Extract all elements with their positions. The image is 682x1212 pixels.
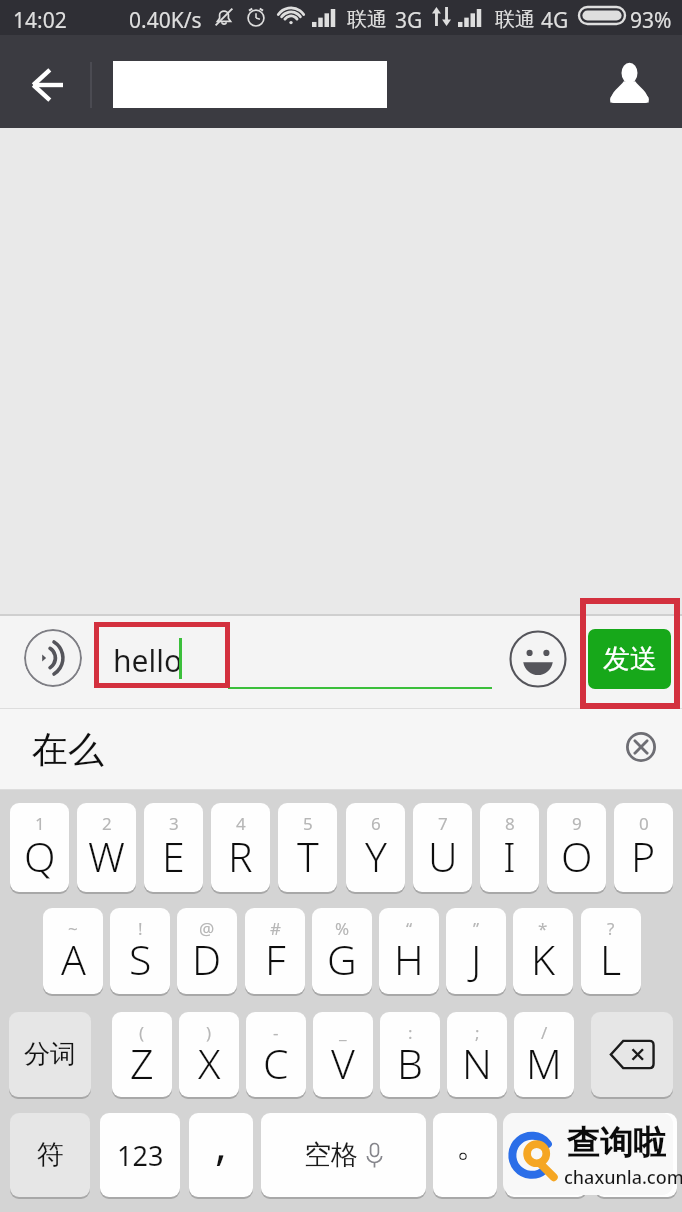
staticText: M bbox=[526, 1035, 562, 1091]
button[interactable]: * bbox=[513, 908, 573, 994]
staticText: W bbox=[88, 828, 125, 884]
button[interactable]: ) bbox=[179, 1012, 239, 1097]
staticText: Q bbox=[24, 828, 56, 884]
button[interactable]: ( bbox=[112, 1012, 172, 1097]
button[interactable]: % bbox=[312, 908, 372, 994]
staticText: hello bbox=[113, 640, 183, 681]
staticText: S bbox=[129, 931, 152, 987]
staticText: I bbox=[503, 828, 516, 884]
button[interactable]: 9 bbox=[547, 803, 606, 892]
staticText: 4 bbox=[236, 812, 246, 835]
staticText: % bbox=[335, 917, 350, 940]
button[interactable] bbox=[595, 1113, 677, 1197]
button[interactable]: 发送 bbox=[588, 629, 671, 689]
staticText: 分词 bbox=[24, 1038, 76, 1071]
staticText: ; bbox=[475, 1021, 480, 1044]
button[interactable]: Emoji bbox=[508, 629, 568, 689]
staticText: ? bbox=[607, 917, 615, 940]
staticText: H bbox=[394, 931, 424, 987]
button[interactable]: ~ bbox=[43, 908, 103, 994]
button[interactable]: 3 bbox=[144, 803, 203, 892]
button[interactable]: “ bbox=[379, 908, 439, 994]
button[interactable]: 6 bbox=[346, 803, 405, 892]
staticText: # bbox=[270, 917, 281, 940]
staticText: ” bbox=[473, 917, 480, 940]
button[interactable]: ? bbox=[581, 908, 641, 994]
staticText: 。 bbox=[456, 1123, 490, 1166]
button[interactable]: Voice input bbox=[24, 629, 82, 687]
staticText: E bbox=[162, 828, 185, 884]
button[interactable]: 分词 bbox=[9, 1012, 91, 1097]
button[interactable]: _ bbox=[313, 1012, 373, 1097]
staticText: 联通 bbox=[495, 7, 535, 32]
staticText: ( bbox=[139, 1021, 145, 1044]
button[interactable]: 。 bbox=[433, 1113, 497, 1197]
staticText: 0.40K/s bbox=[129, 6, 202, 35]
button[interactable]: - bbox=[246, 1012, 306, 1097]
button[interactable]: ” bbox=[446, 908, 506, 994]
button[interactable]: # bbox=[245, 908, 305, 994]
staticText: ) bbox=[206, 1021, 212, 1044]
button[interactable]: @ bbox=[177, 908, 237, 994]
staticText: 3 bbox=[169, 812, 179, 835]
button[interactable]: 符 bbox=[10, 1113, 90, 1197]
staticText: Y bbox=[365, 828, 387, 884]
button[interactable]: Clear suggestions bbox=[619, 725, 663, 769]
button[interactable]: 0 bbox=[614, 803, 673, 892]
staticText: chaxunla.com bbox=[564, 1165, 682, 1190]
staticText: ~ bbox=[68, 917, 78, 940]
button[interactable]: 5 bbox=[278, 803, 337, 892]
button[interactable]: 4 bbox=[211, 803, 270, 892]
staticText: G bbox=[327, 931, 357, 987]
staticText: ! bbox=[138, 917, 143, 940]
staticText: 5 bbox=[303, 812, 313, 835]
staticText: 查询啦 bbox=[567, 1122, 666, 1164]
staticText: A bbox=[61, 931, 86, 987]
staticText: @ bbox=[199, 917, 215, 940]
staticText: 3G bbox=[395, 6, 423, 35]
button[interactable]: 空格 bbox=[261, 1113, 426, 1197]
button[interactable]: , bbox=[189, 1113, 253, 1197]
button[interactable] bbox=[505, 1113, 587, 1197]
button[interactable]: / bbox=[514, 1012, 574, 1097]
button[interactable]: 123 bbox=[100, 1113, 180, 1197]
button[interactable]: ! bbox=[110, 908, 170, 994]
staticText: 123 bbox=[117, 1137, 164, 1174]
button[interactable]: : bbox=[380, 1012, 440, 1097]
staticText: J bbox=[471, 931, 482, 987]
staticText: X bbox=[198, 1035, 221, 1091]
button[interactable]: Back bbox=[17, 55, 77, 115]
staticText: D bbox=[192, 931, 222, 987]
staticText: U bbox=[428, 828, 458, 884]
staticText: P bbox=[631, 828, 656, 884]
staticText: 2 bbox=[102, 812, 112, 835]
staticText: Z bbox=[130, 1035, 154, 1091]
staticText: 空格 bbox=[304, 1138, 358, 1172]
staticText: * bbox=[538, 917, 548, 940]
button[interactable]: 在么 bbox=[32, 727, 104, 772]
button[interactable]: ; bbox=[447, 1012, 507, 1097]
staticText: 0 bbox=[639, 812, 649, 835]
staticText: F bbox=[265, 931, 286, 987]
staticText: _ bbox=[339, 1021, 347, 1044]
staticText: O bbox=[561, 828, 593, 884]
staticText: 符 bbox=[37, 1138, 64, 1172]
staticText: 1 bbox=[35, 812, 45, 835]
button[interactable]: 1 bbox=[10, 803, 69, 892]
staticText: 14:02 bbox=[13, 6, 67, 35]
staticText: B bbox=[397, 1035, 423, 1091]
staticText: 4G bbox=[541, 6, 569, 35]
button[interactable]: chaxunla.com watermark bbox=[503, 1113, 682, 1195]
staticText: : bbox=[408, 1021, 413, 1044]
button[interactable]: 8 bbox=[480, 803, 539, 892]
button[interactable]: Backspace bbox=[591, 1012, 673, 1097]
staticText: N bbox=[462, 1035, 492, 1091]
button[interactable]: 7 bbox=[413, 803, 472, 892]
staticText: “ bbox=[406, 917, 413, 940]
button[interactable]: Contact profile bbox=[600, 53, 658, 111]
button[interactable]: 2 bbox=[77, 803, 136, 892]
staticText: 93% bbox=[630, 6, 672, 35]
staticText: R bbox=[228, 828, 253, 884]
staticText: C bbox=[263, 1035, 289, 1091]
